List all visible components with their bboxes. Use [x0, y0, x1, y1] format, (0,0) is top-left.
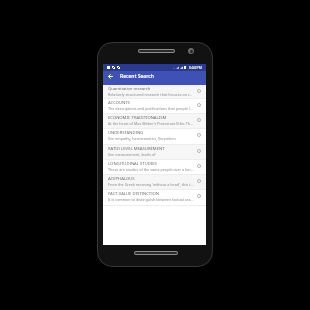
other: More — [196, 163, 202, 169]
staticText: Relatively structured research that focu… — [108, 92, 194, 97]
other: More — [196, 193, 202, 199]
staticText: See measurement, levels of — [108, 152, 156, 157]
staticText: 5:04 PM — [189, 65, 202, 70]
staticText: From the Greek meaning 'without a head',… — [108, 182, 194, 187]
other: More — [196, 178, 202, 184]
staticText: ACEPHALOUS — [108, 176, 135, 182]
other: More — [196, 148, 202, 154]
staticText: Recent Search — [120, 73, 154, 80]
staticText: RATIO LEVEL MEASUREMENT — [108, 146, 165, 152]
button[interactable]: FACT-VALUE DISTINCTION — [103, 190, 206, 206]
other: More — [196, 117, 202, 123]
button[interactable]: ACCOUNTS — [103, 99, 206, 114]
staticText: The descriptions and justifications that… — [108, 106, 194, 111]
staticText: It is common to distinguish between fact… — [108, 197, 194, 202]
staticText: See empathy, hermeneutics, Verstehen — [108, 136, 176, 141]
button[interactable]: RATIO LEVEL MEASUREMENT — [103, 145, 206, 160]
staticText: FACT-VALUE DISTINCTION — [108, 191, 160, 197]
staticText: At the heart of Max Weber's Protestant E… — [108, 121, 194, 126]
staticText: .. — [173, 66, 175, 70]
button[interactable]: Back — [106, 72, 115, 81]
button[interactable]: ECONOMIC TRADITIONALISM — [103, 114, 206, 129]
button[interactable]: Quantitative research — [103, 85, 206, 99]
button[interactable]: ACEPHALOUS — [103, 175, 206, 190]
staticText: ECONOMIC TRADITIONALISM — [108, 115, 167, 121]
staticText: These are studies of the same people ove… — [108, 167, 194, 172]
staticText: UNDERSTANDING — [108, 130, 144, 136]
staticText: LONGITUDINAL STUDIES — [108, 161, 157, 167]
button[interactable]: LONGITUDINAL STUDIES — [103, 160, 206, 175]
staticText: Quantitative research — [108, 86, 151, 92]
other: More — [196, 88, 202, 94]
other: More — [196, 132, 202, 138]
button[interactable]: UNDERSTANDING — [103, 129, 206, 145]
other: More — [196, 102, 202, 108]
staticText: ACCOUNTS — [108, 100, 130, 106]
